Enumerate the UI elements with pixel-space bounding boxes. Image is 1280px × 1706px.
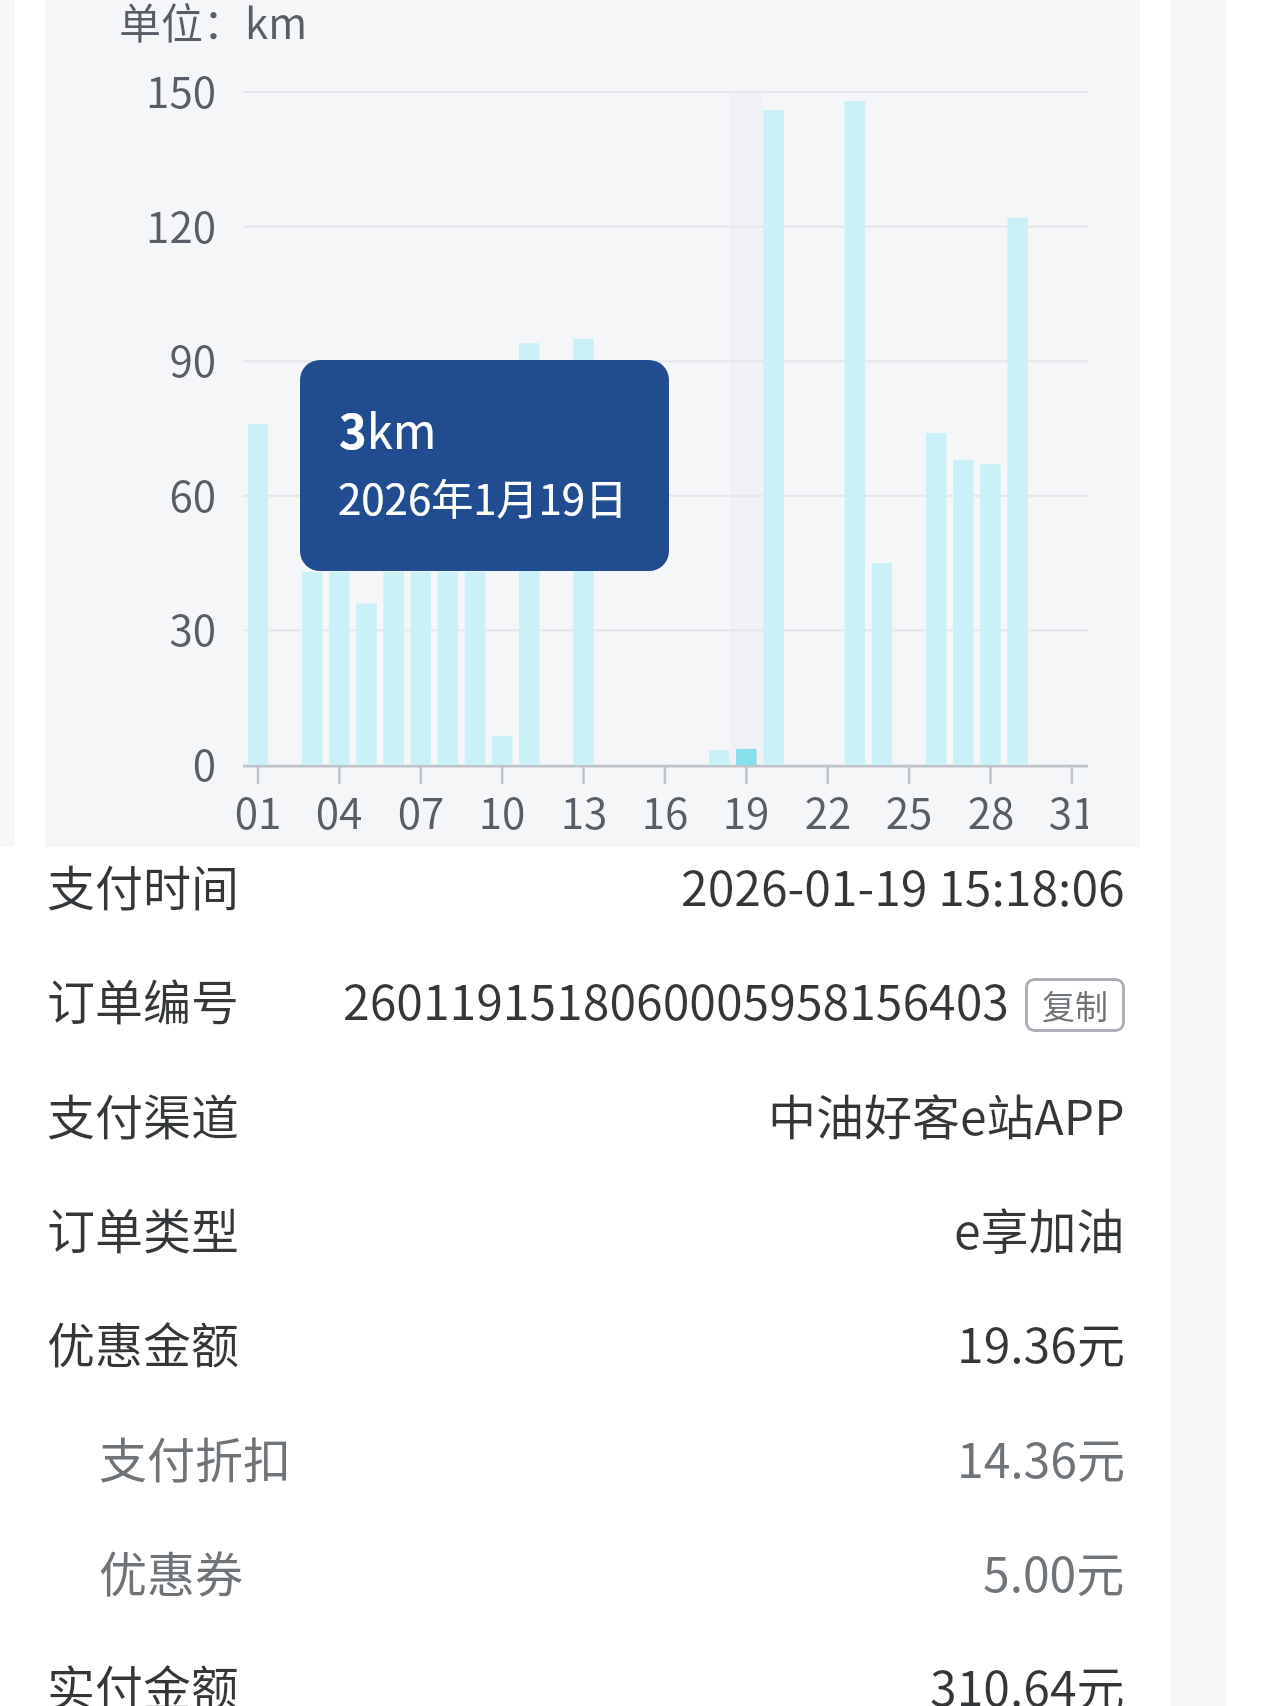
staticText: 2026-01-19 15:18:06 (681, 850, 1125, 920)
staticText: 14.36元 (957, 1422, 1125, 1492)
staticText: 01 (218, 780, 298, 841)
staticText: 90 (45, 328, 216, 389)
staticText: 支付时间 (47, 850, 240, 920)
staticText: 订单编号 (47, 964, 240, 1034)
staticText: 2601191518060005958156403 (343, 964, 1010, 1034)
staticText: 实付金额 (47, 1650, 240, 1706)
staticText: 60 (45, 463, 216, 524)
staticText: 13 (544, 780, 624, 841)
staticText: 04 (299, 780, 379, 841)
button[interactable]: 复制 (1025, 978, 1125, 1032)
staticText: 25 (869, 780, 949, 841)
staticText: 订单类型 (47, 1193, 240, 1263)
staticText: 3km (339, 394, 437, 462)
staticText: 优惠金额 (47, 1307, 240, 1377)
staticText: 120 (45, 194, 216, 255)
staticText: 19.36元 (957, 1307, 1125, 1377)
staticText: 单位：km (119, 0, 308, 51)
button[interactable]: 支付折扣 (0, 1400, 1280, 1514)
staticText: 22 (788, 780, 868, 841)
button[interactable]: 支付时间 (0, 828, 1280, 942)
button[interactable]: 优惠券 (0, 1514, 1280, 1628)
staticText: 310.64元 (930, 1650, 1125, 1706)
staticText: 支付折扣 (99, 1422, 292, 1492)
staticText: 5.00元 (983, 1536, 1125, 1606)
button[interactable]: 订单类型 (0, 1171, 1280, 1285)
staticText: 150 (45, 59, 216, 120)
staticText: 19 (706, 780, 786, 841)
button[interactable]: 实付金额 (0, 1628, 1280, 1706)
button[interactable]: 3km (300, 360, 669, 571)
staticText: 16 (625, 780, 705, 841)
staticText: 07 (381, 780, 461, 841)
staticText: 31 (1032, 780, 1088, 841)
button[interactable]: 优惠金额 (0, 1285, 1280, 1399)
staticText: 中油好客e站APP (768, 1079, 1125, 1149)
staticText: 30 (45, 597, 216, 658)
staticText: 支付渠道 (47, 1079, 240, 1149)
staticText: 2026年1月19日 (338, 466, 628, 527)
staticText: 10 (462, 780, 542, 841)
staticText: 0 (45, 732, 216, 793)
staticText: 优惠券 (99, 1536, 244, 1606)
button[interactable]: 支付渠道 (0, 1057, 1280, 1171)
button[interactable]: 订单编号 (0, 942, 1280, 1056)
staticText: 28 (951, 780, 1031, 841)
staticText: 复制 (1042, 981, 1108, 1029)
staticText: e享加油 (954, 1193, 1125, 1263)
